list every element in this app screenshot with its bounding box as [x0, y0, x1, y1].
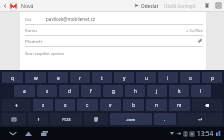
- staticText: g: [112, 88, 115, 94]
- button[interactable]: a: [14, 85, 35, 97]
- staticText: o: [189, 75, 192, 81]
- button[interactable]: l: [191, 85, 211, 97]
- staticText: t: [101, 75, 103, 81]
- button[interactable]: g: [103, 85, 123, 97]
- staticText: r: [79, 75, 81, 81]
- button[interactable]: k: [169, 85, 189, 97]
- button[interactable]: e: [48, 72, 68, 83]
- staticText: h: [134, 88, 137, 94]
- staticText: c: [86, 102, 89, 108]
- staticText: Předmět: [25, 38, 43, 44]
- staticText: a: [23, 88, 26, 94]
- staticText: s: [46, 88, 49, 94]
- button[interactable]: .: [154, 113, 176, 125]
- staticText: pavlicek@mobilenet.cz: [46, 16, 96, 22]
- button[interactable]: f: [81, 85, 101, 97]
- staticText: x: [64, 102, 67, 108]
- button[interactable]: Back: [6, 127, 19, 140]
- staticText: f: [90, 88, 92, 94]
- button[interactable]: Od: [20, 14, 206, 25]
- button[interactable]: b: [123, 99, 144, 111]
- button[interactable]: Backspace: [192, 99, 222, 111]
- button[interactable]: v: [100, 99, 121, 111]
- button[interactable]: i: [158, 72, 178, 83]
- staticText: Sem napište zprávu: [25, 50, 65, 56]
- button[interactable]: Home: [22, 127, 35, 140]
- button[interactable]: Switch keyboard: [2, 113, 26, 125]
- button[interactable]: o: [180, 72, 200, 83]
- staticText: .com: [126, 117, 136, 122]
- staticText: p: [211, 75, 214, 81]
- button[interactable]: Enter: [178, 113, 222, 125]
- button[interactable]: Back: [0, 0, 9, 11]
- button[interactable]: Voice input: [28, 113, 48, 125]
- staticText: b: [132, 102, 135, 108]
- button[interactable]: x: [55, 99, 75, 111]
- button[interactable]: w: [25, 72, 46, 83]
- staticText: n: [155, 102, 158, 108]
- button[interactable]: Shift: [2, 99, 31, 111]
- button[interactable]: n: [146, 99, 167, 111]
- button[interactable]: d: [59, 85, 79, 97]
- staticText: l: [200, 88, 202, 94]
- button[interactable]: z: [33, 99, 53, 111]
- staticText: ?123: [62, 117, 71, 122]
- staticText: Komu: [25, 27, 37, 33]
- button[interactable]: More options: [212, 0, 224, 11]
- staticText: i: [167, 75, 169, 81]
- staticText: k: [178, 88, 181, 94]
- staticText: d: [68, 88, 71, 94]
- button[interactable]: y: [114, 72, 134, 83]
- button[interactable]: At sign: [84, 113, 108, 125]
- staticText: e: [57, 75, 60, 81]
- staticText: m: [177, 102, 182, 108]
- button[interactable]: + Cc/Bcc: [186, 27, 203, 33]
- staticText: j: [156, 88, 158, 94]
- button[interactable]: c: [77, 99, 98, 111]
- button[interactable]: m: [169, 99, 190, 111]
- staticText: @: [94, 116, 99, 122]
- staticText: 13:54: [197, 129, 214, 138]
- button[interactable]: .com: [110, 113, 152, 125]
- button[interactable]: j: [147, 85, 167, 97]
- button[interactable]: r: [70, 72, 90, 83]
- staticText: q: [11, 75, 14, 81]
- button[interactable]: Komu: [20, 25, 206, 36]
- staticText: .: [164, 116, 166, 122]
- staticText: Odeslat: [141, 3, 159, 9]
- button[interactable]: Attach file: [197, 38, 203, 44]
- button[interactable]: s: [37, 85, 57, 97]
- staticText: v: [109, 102, 112, 108]
- button[interactable]: Recents: [38, 127, 51, 140]
- button[interactable]: Odeslat: [134, 0, 159, 11]
- button[interactable]: ?123: [50, 113, 82, 125]
- staticText: Nová: [21, 2, 34, 9]
- button[interactable]: h: [125, 85, 145, 97]
- button[interactable]: Discard: [201, 0, 212, 11]
- staticText: z: [42, 102, 45, 108]
- staticText: y: [123, 75, 126, 81]
- button[interactable]: u: [136, 72, 156, 83]
- button[interactable]: Uložit koncept: [164, 3, 196, 9]
- button[interactable]: p: [202, 72, 222, 83]
- button[interactable]: Předmět: [20, 36, 206, 47]
- button[interactable]: t: [92, 72, 112, 83]
- staticText: Od: [25, 16, 31, 22]
- staticText: w: [34, 75, 38, 81]
- staticText: u: [145, 75, 148, 81]
- button[interactable]: q: [2, 72, 23, 83]
